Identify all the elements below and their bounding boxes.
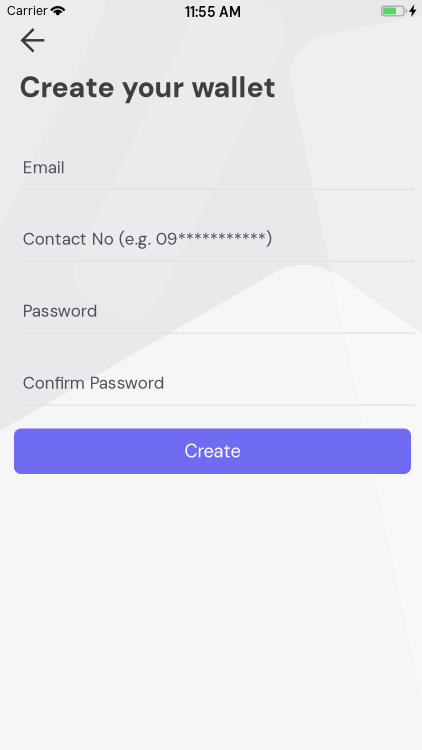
button[interactable]: Contact No (e.g. 09***********) bbox=[23, 228, 415, 262]
staticText: Contact No (e.g. 09***********) bbox=[23, 228, 272, 250]
button[interactable]: Confirm Password bbox=[23, 372, 415, 406]
staticText: 11:55 AM bbox=[185, 3, 241, 21]
staticText: Carrier bbox=[7, 3, 48, 19]
staticText: Create your wallet bbox=[19, 69, 275, 106]
button[interactable]: Create bbox=[14, 428, 411, 474]
staticText: Email bbox=[23, 156, 65, 178]
button[interactable]: Back bbox=[0, 0, 64, 54]
staticText: Confirm Password bbox=[23, 372, 165, 394]
staticText: Create bbox=[184, 439, 240, 463]
button[interactable]: Email bbox=[23, 156, 415, 190]
button[interactable]: Password bbox=[23, 300, 415, 334]
staticText: Password bbox=[23, 300, 98, 322]
